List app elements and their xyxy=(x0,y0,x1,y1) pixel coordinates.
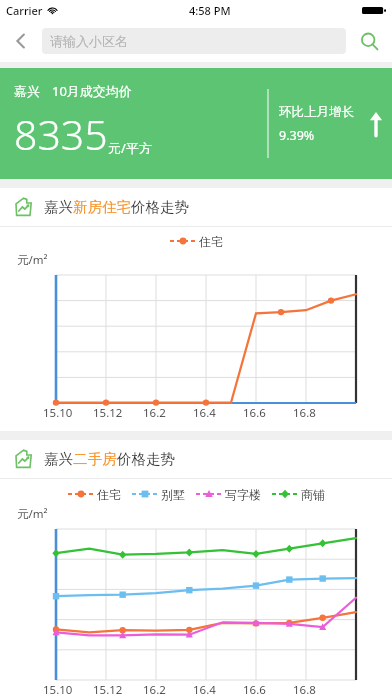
staticText: 16.2 xyxy=(143,682,166,696)
staticText: 住宅 xyxy=(97,487,121,502)
staticText: 环比上月增长 xyxy=(279,104,354,120)
staticText: 写字楼 xyxy=(225,487,261,502)
staticText: 15.12 xyxy=(93,682,123,696)
staticText: 元/m² xyxy=(17,506,48,522)
staticText: 15.12 xyxy=(93,405,123,421)
button[interactable]: 嘉兴 xyxy=(0,68,392,179)
staticText: 10月成交均价 xyxy=(52,82,132,100)
staticText: 16.4 xyxy=(193,405,216,421)
staticText: Carrier xyxy=(6,3,43,18)
staticText: 元/m² xyxy=(17,252,48,268)
button[interactable]: 请输入小区名 xyxy=(42,28,346,54)
staticText: 商铺 xyxy=(301,487,325,502)
staticText: 新房住宅 xyxy=(73,198,131,216)
staticText: 16.2 xyxy=(143,405,166,421)
staticText: 嘉兴 xyxy=(14,83,40,99)
staticText: 住宅 xyxy=(199,234,223,249)
staticText: 二手房 xyxy=(73,450,117,468)
staticText: 别墅 xyxy=(161,487,185,502)
button[interactable]: Search xyxy=(346,20,392,62)
staticText: 15.10 xyxy=(43,405,73,421)
staticText: 元/平方 xyxy=(108,139,152,157)
staticText: 9.39% xyxy=(279,127,315,144)
staticText: 价格走势 xyxy=(117,450,175,468)
staticText: 16.4 xyxy=(193,682,216,696)
staticText: 嘉兴 xyxy=(44,450,73,468)
staticText: 0 xyxy=(47,402,54,403)
button[interactable]: 嘉兴 xyxy=(0,188,392,226)
button[interactable]: Back xyxy=(0,20,42,62)
staticText: 16.8 xyxy=(293,682,316,696)
staticText: 16.6 xyxy=(243,682,266,696)
staticText: 嘉兴 xyxy=(44,198,73,216)
staticText: 8335 xyxy=(14,106,108,162)
staticText: 4:58 PM xyxy=(189,3,231,18)
staticText: 16.6 xyxy=(243,405,266,421)
staticText: 15.10 xyxy=(43,682,73,696)
staticText: 价格走势 xyxy=(131,198,189,216)
staticText: 请输入小区名 xyxy=(50,33,128,49)
button[interactable]: 嘉兴 xyxy=(0,440,392,478)
staticText: 16.8 xyxy=(293,405,316,421)
